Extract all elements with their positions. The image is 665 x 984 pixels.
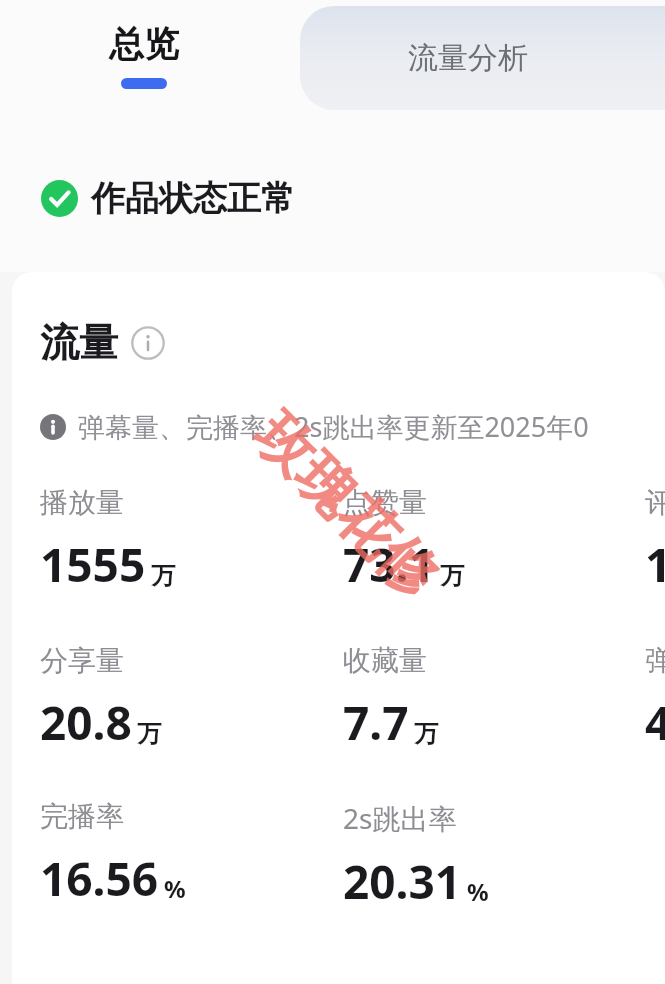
staticText: 1 <box>645 533 665 596</box>
staticText: 2s跳出率 <box>343 799 457 837</box>
staticText: 万 <box>151 561 175 591</box>
staticText: 73.1 <box>343 533 435 596</box>
staticText: 收藏量 <box>343 643 427 678</box>
staticText: 万 <box>440 561 464 591</box>
staticText: 播放量 <box>40 485 124 520</box>
staticText: 流量 <box>40 318 118 367</box>
staticText: 作品状态正常 <box>91 177 295 220</box>
staticText: 流量分析 <box>408 39 528 77</box>
staticText: 总览 <box>109 22 179 66</box>
staticText: 弹 <box>645 643 665 678</box>
staticText: 4 <box>645 691 665 754</box>
staticText: 弹幕量、完播率、2s跳出率更新至2025年0 <box>78 408 589 445</box>
staticText: % <box>467 875 489 908</box>
staticText: 7.7 <box>343 691 409 754</box>
staticText: 分享量 <box>40 643 124 678</box>
staticText: 玫瑰花修 <box>239 399 451 610</box>
staticText: 完播率 <box>40 799 124 834</box>
button[interactable]: 流量说明 <box>131 326 165 360</box>
button[interactable]: 总览 <box>82 22 206 89</box>
staticText: 20.8 <box>40 691 132 754</box>
staticText: 万 <box>137 719 161 749</box>
button[interactable]: 流量分析 <box>300 6 665 110</box>
staticText: % <box>164 872 186 905</box>
staticText: 万 <box>414 719 438 749</box>
staticText: 20.31 <box>343 850 462 913</box>
staticText: 评 <box>645 485 665 520</box>
staticText: 16.56 <box>40 847 159 910</box>
staticText: 点赞量 <box>343 485 427 520</box>
staticText: 1555 <box>40 533 146 596</box>
